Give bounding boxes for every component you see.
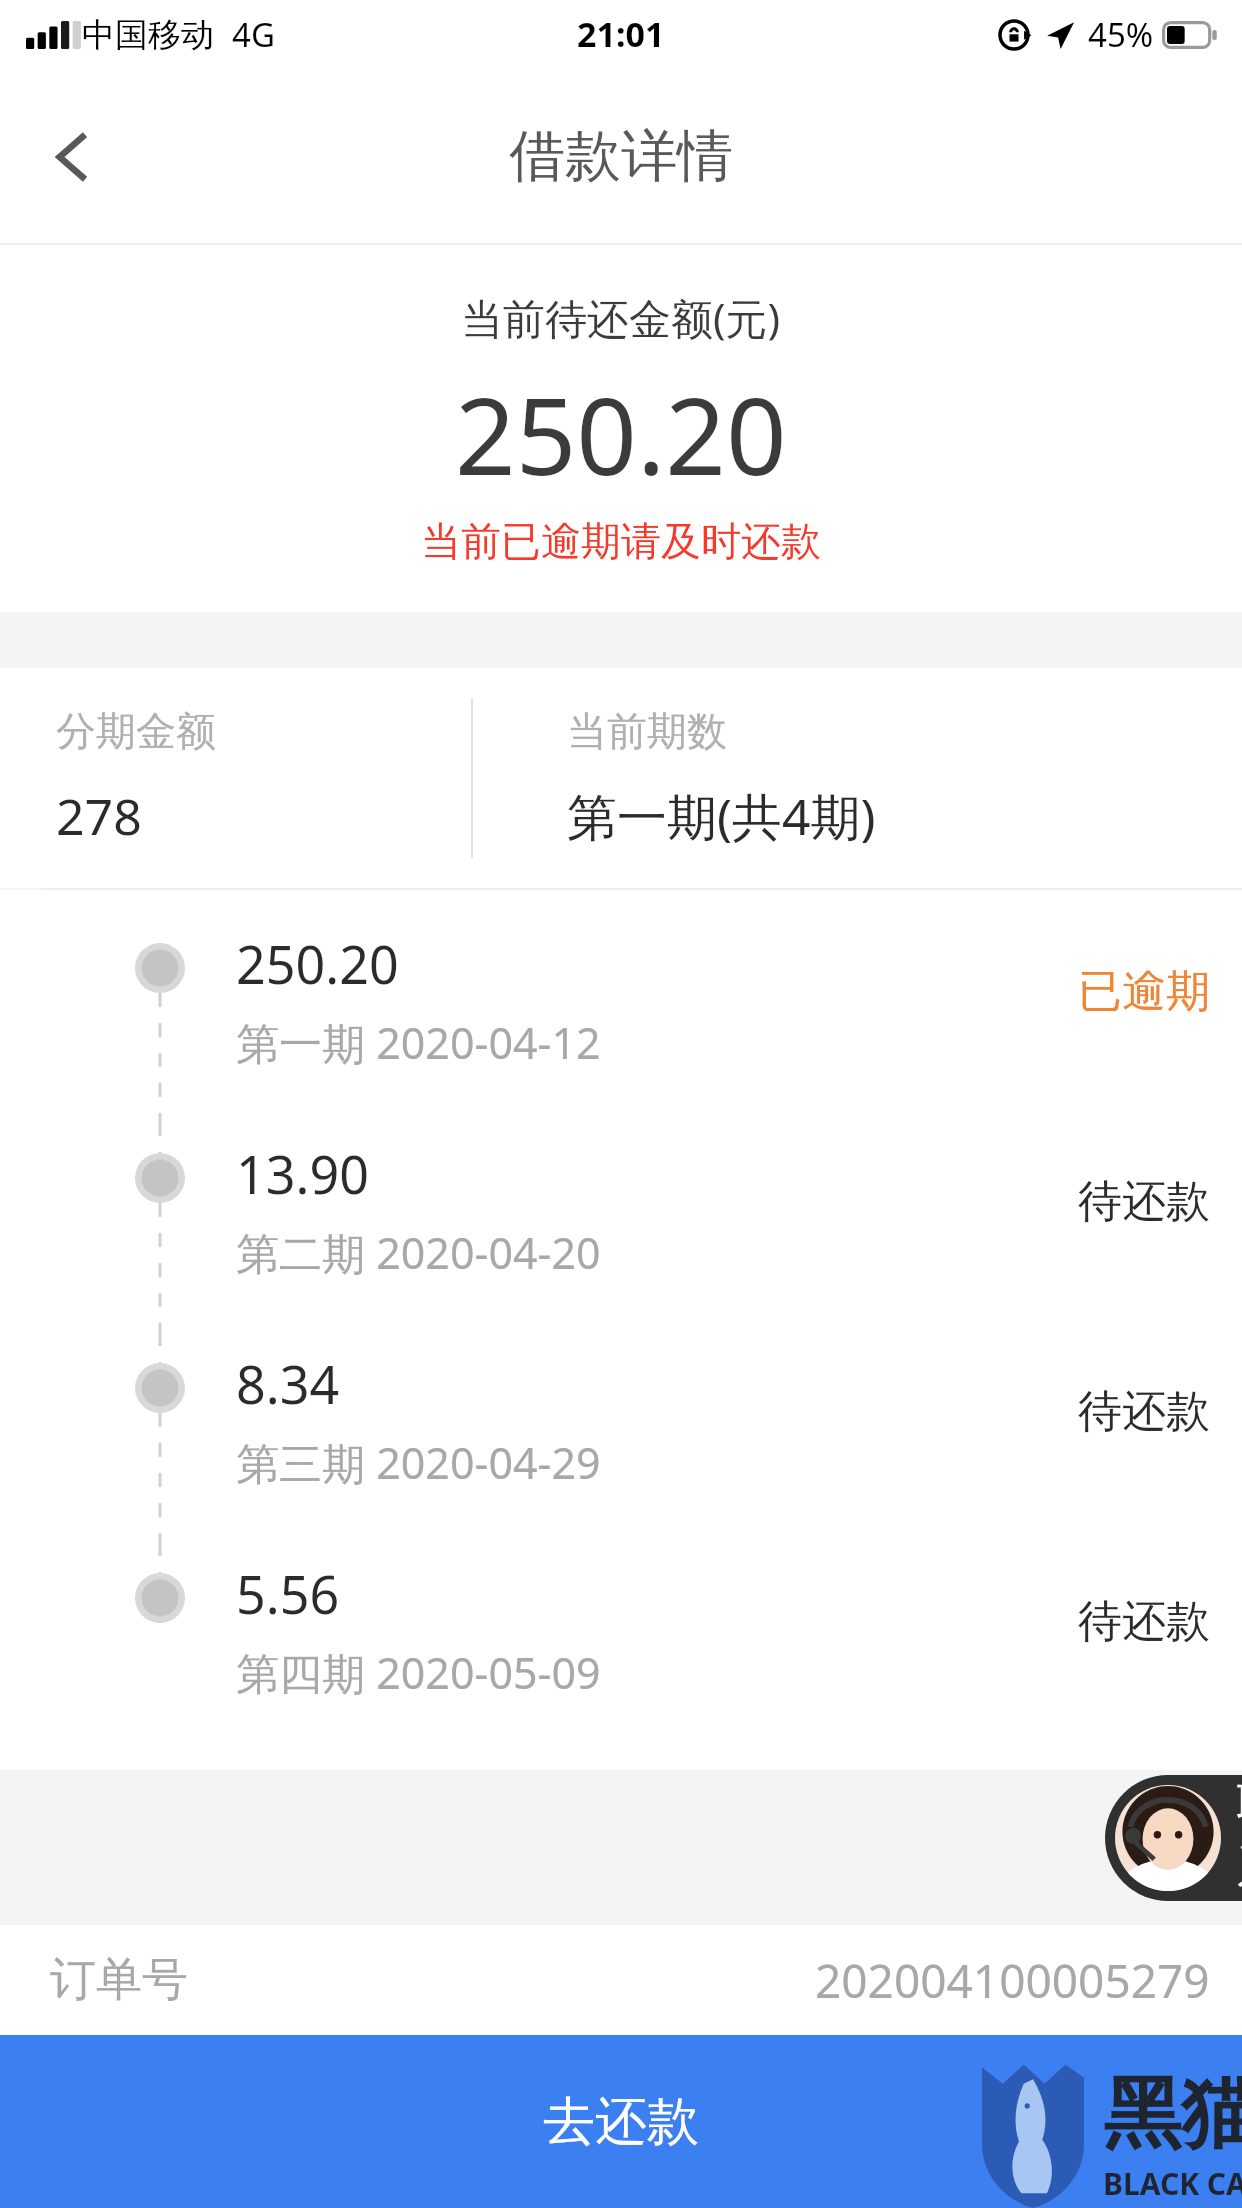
staticText: 去还款 [543,2089,699,2155]
staticText: 第三期 2020-04-29 [236,1433,601,1492]
staticText: 250.20 [236,928,399,999]
staticText: 278 [56,782,142,850]
staticText: 202004100005279 [815,1949,1210,2012]
staticText: 第四期 2020-05-09 [236,1643,601,1702]
button[interactable]: 联系客服 [1105,1775,1242,1901]
staticText: 中国移动 [82,14,214,56]
staticText: 第一期(共4期) [567,782,876,850]
staticText: 已逾期 [1078,964,1210,1019]
staticText: 第二期 2020-04-20 [236,1223,601,1282]
staticText: 待还款 [1078,1384,1210,1439]
staticText: 分期金额 [56,706,216,756]
staticText: 待还款 [1078,1594,1210,1649]
staticText: 4G [232,12,275,57]
staticText: 借款详情 [509,121,733,192]
staticText: 21:01 [577,11,665,57]
staticText: 待还款 [1078,1174,1210,1229]
staticText: 当前已逾期请及时还款 [421,516,821,566]
staticText: BLACK CAT [1103,2163,1242,2204]
button[interactable]: 8.34 [0,1332,1242,1542]
staticText: 第一期 2020-04-12 [236,1013,601,1072]
staticText: 5.56 [236,1558,340,1629]
staticText: 订单号 [50,1951,188,2009]
staticText: 13.90 [236,1138,369,1209]
button[interactable]: Back [18,102,128,212]
button[interactable]: 250.20 [0,912,1242,1122]
staticText: 45% [1088,12,1154,57]
button[interactable]: 5.56 [0,1542,1242,1752]
staticText: 8.34 [236,1348,340,1419]
button[interactable]: 去还款 [0,2035,1242,2208]
staticText: 当前待还金额(元) [461,289,781,346]
staticText: 当前期数 [567,706,727,756]
button[interactable]: 13.90 [0,1122,1242,1332]
staticText: 联系客服 [1237,1775,1242,1901]
staticText: 250.20 [455,362,787,506]
staticText: 黑猫 [1103,2065,1242,2163]
